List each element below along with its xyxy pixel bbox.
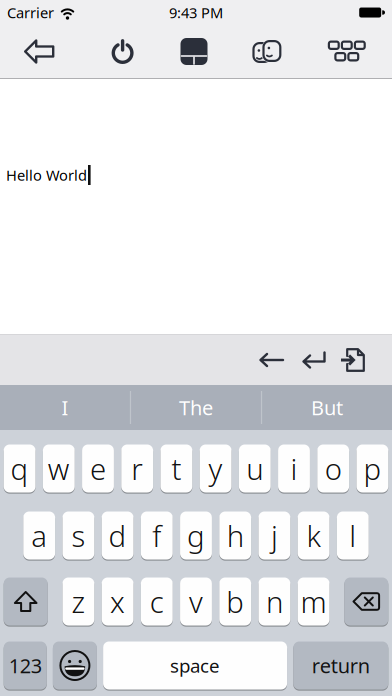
staticText: t (171, 449, 181, 488)
button[interactable]: b (219, 577, 251, 625)
staticText: a (31, 516, 47, 555)
staticText: 123 (9, 652, 42, 679)
button[interactable]: Dismiss keyboard (334, 347, 365, 373)
button[interactable]: f (141, 511, 173, 559)
button[interactable]: Delete (344, 577, 388, 625)
button[interactable]: q (4, 444, 36, 492)
button[interactable]: I (0, 385, 130, 430)
button[interactable]: y (200, 444, 232, 492)
button[interactable]: u (239, 444, 271, 492)
button[interactable]: Move cursor left (249, 343, 294, 377)
button[interactable]: But (262, 385, 392, 430)
staticText: r (131, 449, 143, 488)
staticText: g (187, 516, 205, 555)
button[interactable]: Power (78, 25, 157, 78)
button[interactable]: a (23, 511, 55, 559)
button[interactable]: r (121, 444, 153, 492)
staticText: 9:43 PM (169, 3, 223, 22)
staticText: I (61, 394, 68, 421)
button[interactable]: Emoji (53, 641, 97, 689)
button[interactable]: v (180, 577, 212, 625)
button[interactable]: Numbers (4, 641, 47, 689)
button[interactable]: m (298, 577, 330, 625)
button[interactable]: i (278, 444, 310, 492)
button[interactable]: o (317, 444, 349, 492)
staticText: u (246, 449, 263, 488)
button[interactable]: Back (0, 25, 78, 78)
staticText: x (110, 582, 125, 621)
button[interactable]: x (102, 577, 134, 625)
button[interactable]: The (131, 385, 261, 430)
button[interactable]: s (62, 511, 94, 559)
button[interactable]: l (337, 511, 369, 559)
button[interactable]: Faces (235, 25, 314, 78)
staticText: y (209, 449, 223, 488)
staticText: c (150, 582, 164, 621)
staticText: o (325, 449, 342, 488)
button[interactable]: k (298, 511, 330, 559)
staticText: space (170, 653, 220, 678)
staticText: d (109, 516, 127, 555)
staticText: s (71, 516, 85, 555)
staticText: b (226, 582, 244, 621)
button[interactable]: t (160, 444, 192, 492)
staticText: z (71, 582, 85, 621)
staticText: Carrier (7, 3, 54, 22)
staticText: But (311, 394, 343, 421)
button[interactable]: Shift (4, 577, 48, 625)
button[interactable]: j (258, 511, 290, 559)
button[interactable]: Return (293, 641, 388, 689)
staticText: w (48, 449, 70, 488)
staticText: l (349, 516, 356, 555)
staticText: i (290, 449, 297, 488)
staticText: n (266, 582, 283, 621)
staticText: j (271, 516, 278, 555)
staticText: m (301, 582, 327, 621)
staticText: k (307, 516, 321, 555)
button[interactable]: w (43, 444, 75, 492)
button[interactable]: p (356, 444, 388, 492)
button[interactable]: g (180, 511, 212, 559)
button[interactable]: h (219, 511, 251, 559)
button[interactable]: n (258, 577, 290, 625)
staticText: v (189, 582, 203, 621)
staticText: q (11, 449, 29, 488)
staticText: Hello World (6, 165, 87, 185)
staticText: return (312, 652, 370, 679)
button[interactable]: d (102, 511, 134, 559)
staticText: e (90, 449, 106, 488)
button[interactable]: space (103, 641, 287, 689)
button[interactable]: c (141, 577, 173, 625)
button[interactable]: z (62, 577, 94, 625)
button[interactable]: Trackpad (157, 25, 235, 78)
button[interactable]: Keyboard layout (314, 25, 392, 78)
button[interactable]: Insert newline (294, 343, 334, 376)
staticText: h (227, 516, 244, 555)
staticText: p (363, 449, 381, 488)
button[interactable]: e (82, 444, 114, 492)
staticText: The (179, 394, 213, 421)
staticText: f (152, 516, 161, 555)
